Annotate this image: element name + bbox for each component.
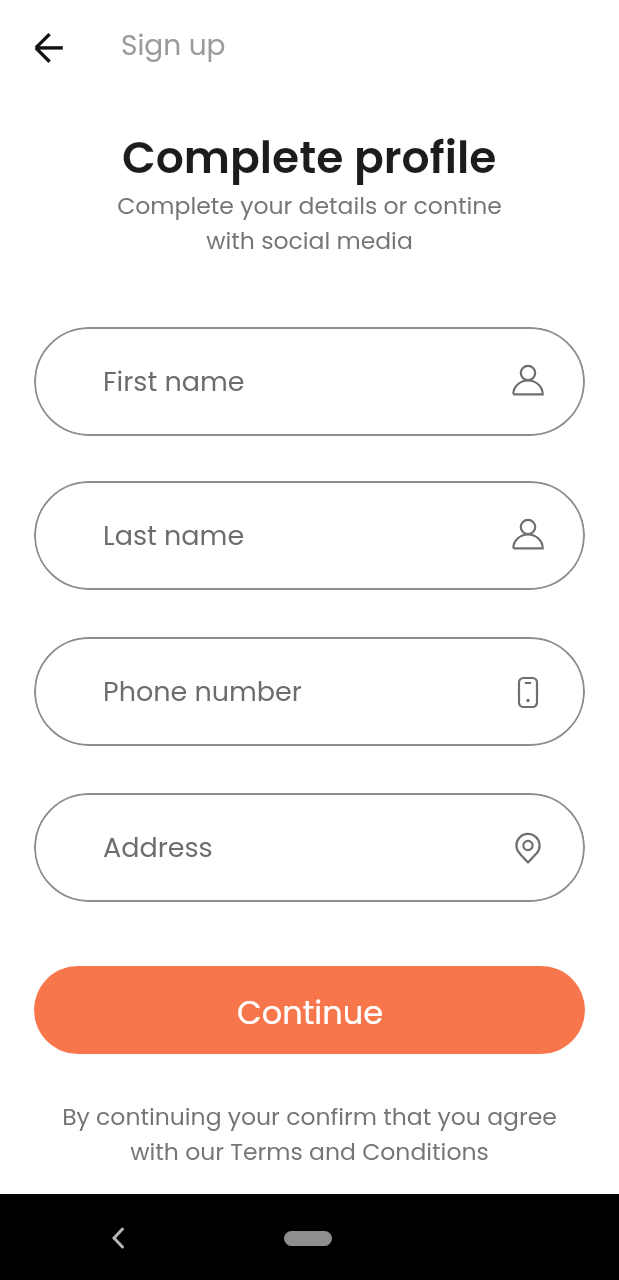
- button[interactable]: Continue: [34, 966, 585, 1054]
- staticText: Last name: [103, 517, 245, 555]
- button[interactable]: First name: [34, 327, 585, 436]
- button[interactable]: Phone number: [34, 637, 585, 746]
- staticText: Address: [103, 829, 213, 867]
- staticText: Continue: [237, 990, 383, 1035]
- staticText: Complete profile: [122, 127, 497, 185]
- staticText: Sign up: [121, 26, 226, 65]
- button[interactable]: Address: [34, 793, 585, 902]
- staticText: By continuing your confirm that you agre…: [62, 1100, 557, 1169]
- button[interactable]: [24, 24, 72, 72]
- staticText: Complete your details or contine with so…: [117, 189, 502, 258]
- staticText: First name: [103, 363, 245, 401]
- button[interactable]: [98, 1218, 138, 1258]
- button[interactable]: [284, 1231, 332, 1246]
- button[interactable]: Last name: [34, 481, 585, 590]
- staticText: Phone number: [103, 673, 302, 711]
